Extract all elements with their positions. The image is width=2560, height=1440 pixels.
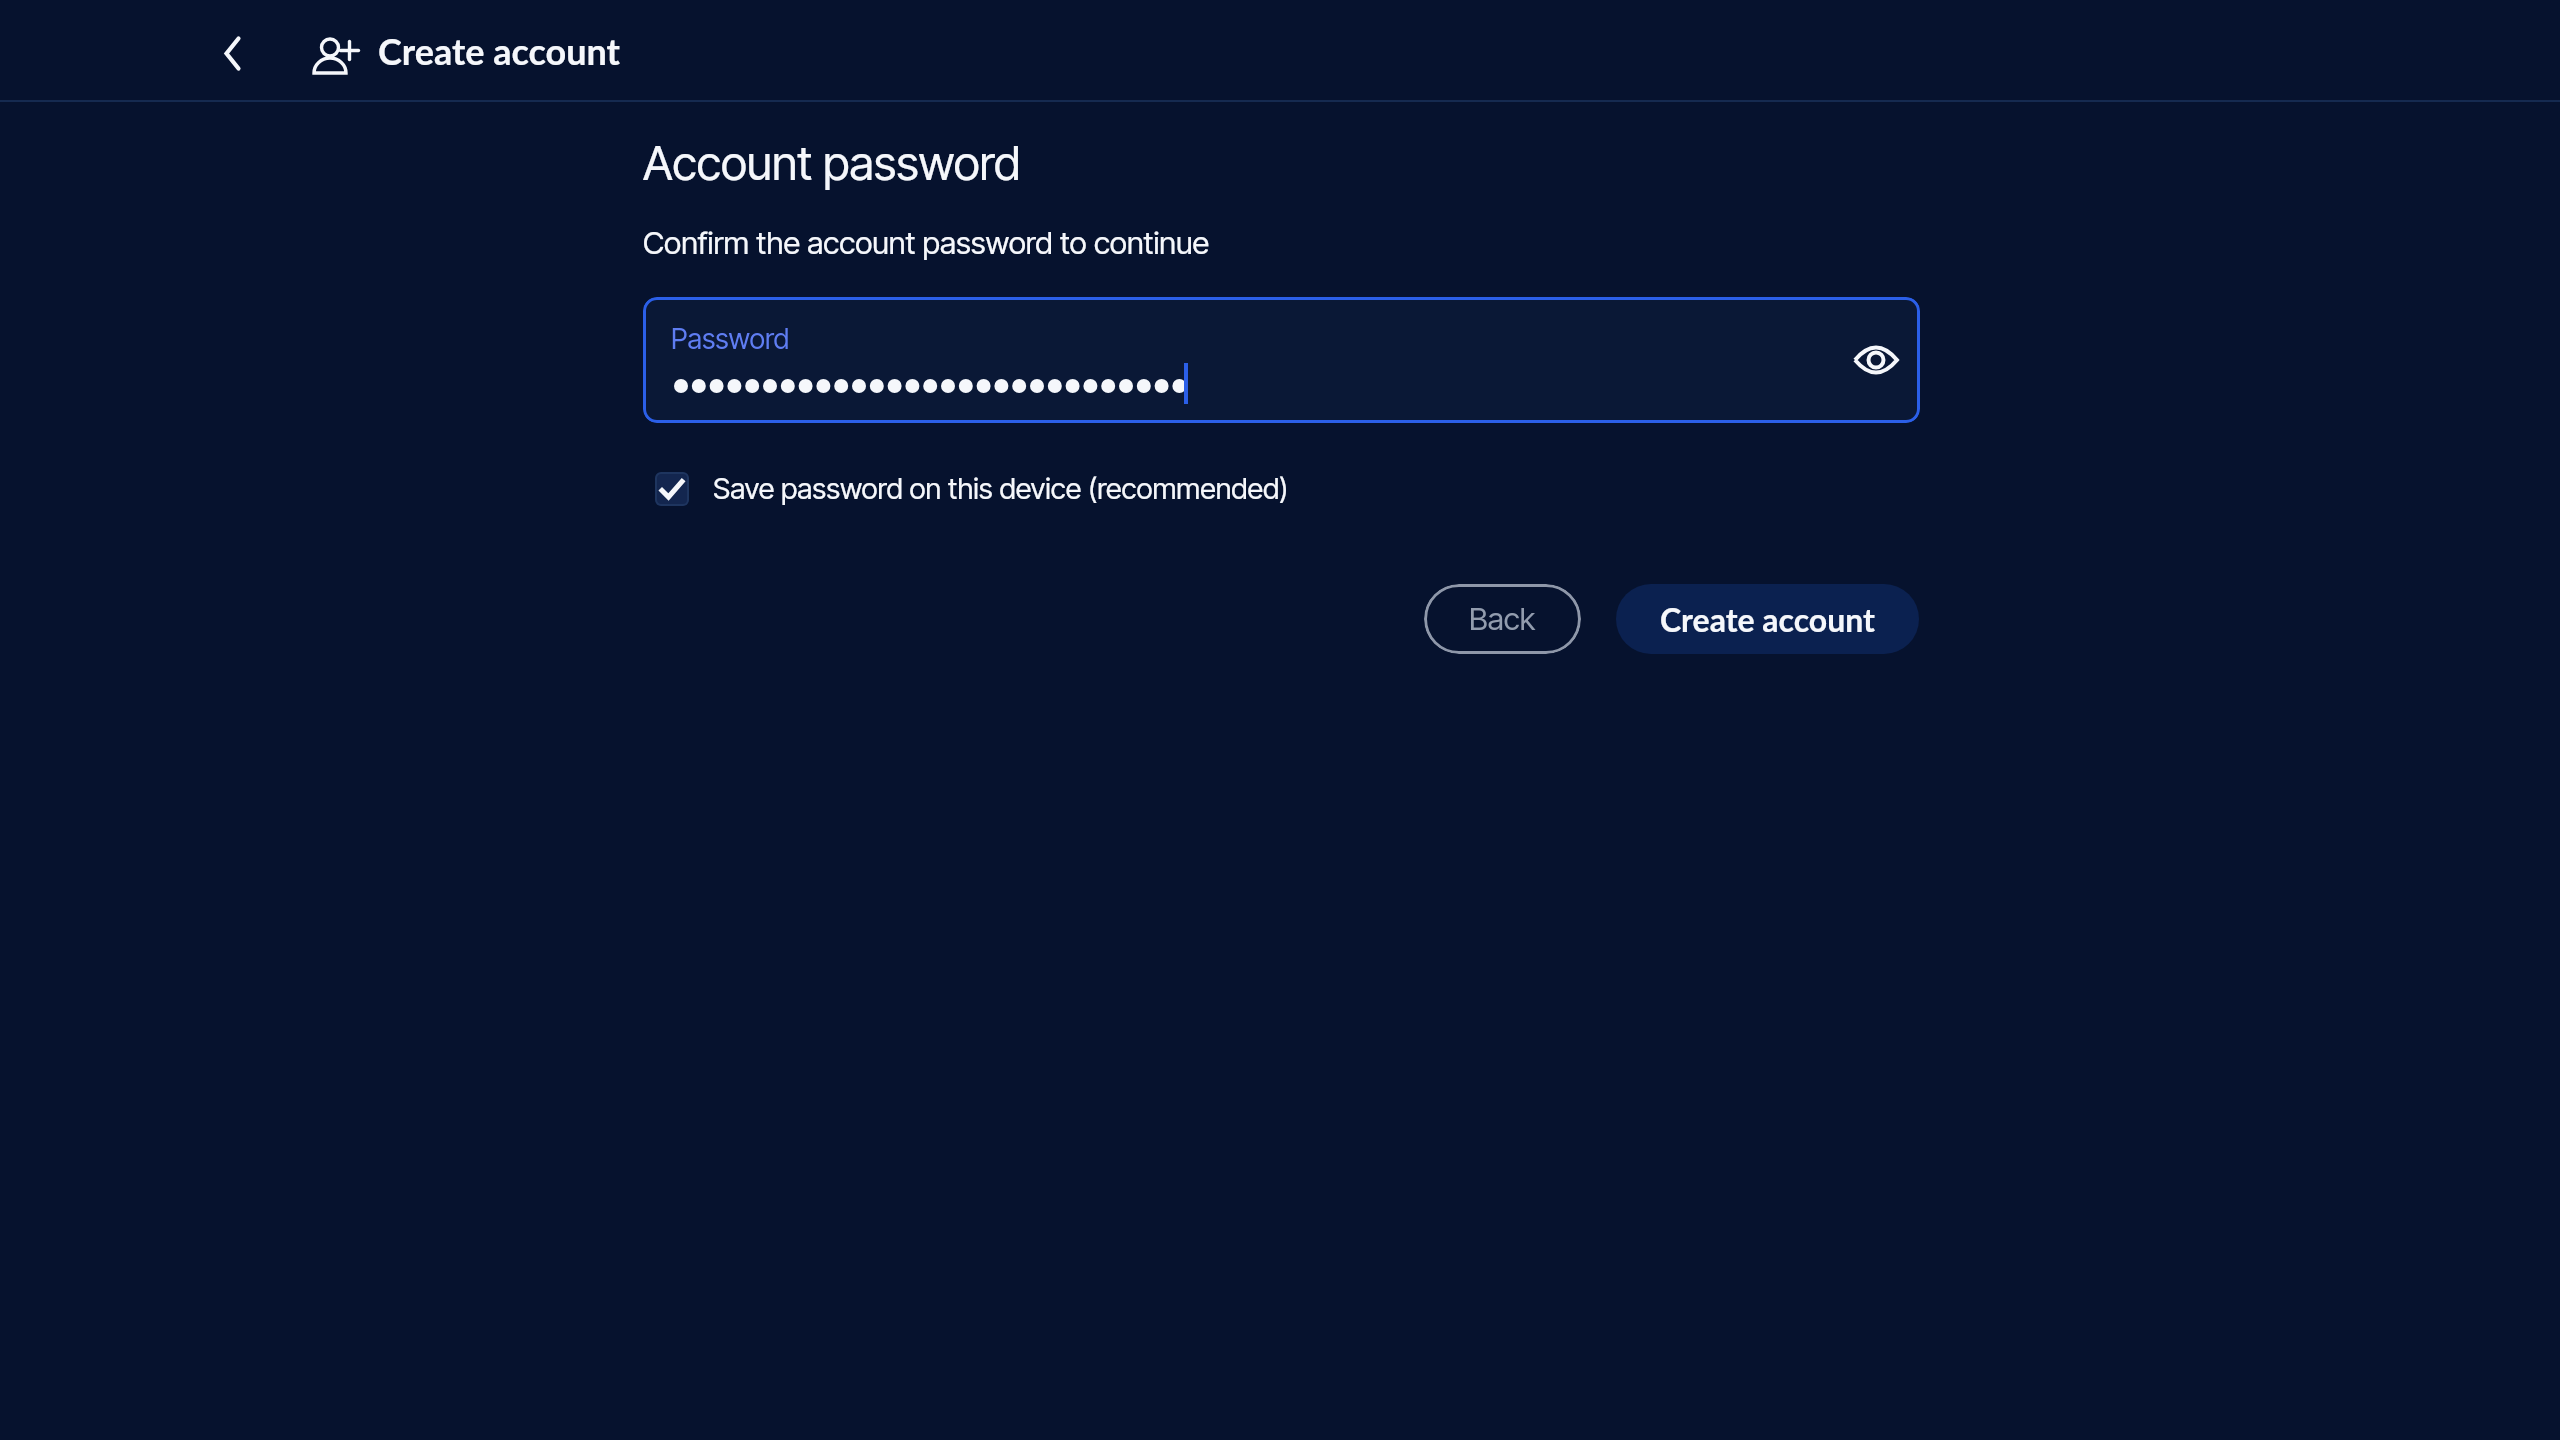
staticText: Create account <box>378 29 620 72</box>
button[interactable]: Save password on this device (recommende… <box>655 471 1289 506</box>
staticText: Password <box>671 322 790 356</box>
staticText: Save password on this device (recommende… <box>713 471 1289 506</box>
button[interactable] <box>1853 343 1899 377</box>
staticText: Create account <box>1660 600 1876 638</box>
staticText: Back <box>1469 600 1536 638</box>
button[interactable]: Back <box>1424 584 1581 654</box>
button[interactable]: Create account <box>1616 584 1919 654</box>
staticText: Account password <box>643 134 1021 191</box>
button[interactable]: Password <box>643 297 1920 423</box>
button[interactable] <box>208 30 256 78</box>
staticText: Confirm the account password to continue <box>643 224 1210 262</box>
